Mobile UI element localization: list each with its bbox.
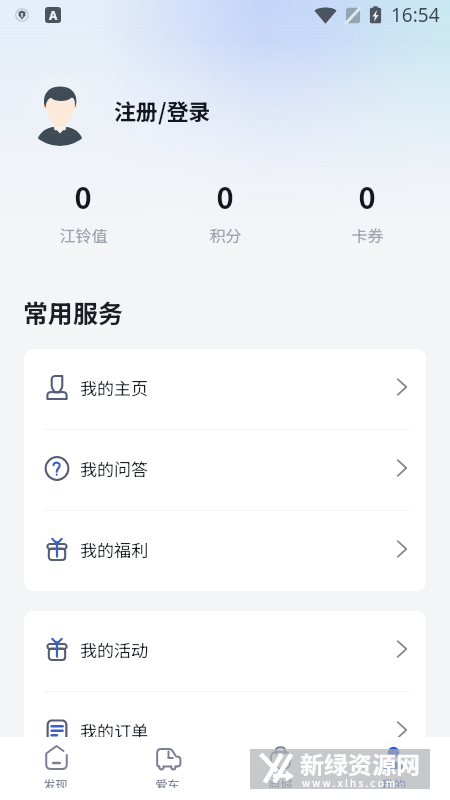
button[interactable]: 我的主页 <box>24 349 426 429</box>
button[interactable]: 我的订单 <box>24 692 426 772</box>
staticText: 我的活动 <box>80 637 148 662</box>
staticText: 我的福利 <box>80 537 148 562</box>
staticText: 我的订单 <box>80 718 148 743</box>
staticText: 爱车 <box>155 775 181 788</box>
button[interactable]: 0 <box>12 175 154 246</box>
staticText: 商城 <box>268 775 294 788</box>
button[interactable]: 注册/登录 <box>0 74 450 146</box>
button[interactable]: 我的 <box>337 737 450 800</box>
button[interactable]: 商城 <box>224 737 337 800</box>
staticText: 0 <box>216 175 234 217</box>
staticText: 16:54 <box>391 2 440 28</box>
staticText: 注册/登录 <box>114 94 211 126</box>
button[interactable]: 爱车 <box>112 737 224 800</box>
button[interactable]: 我的福利 <box>24 511 426 591</box>
staticText: 我的问答 <box>80 456 148 481</box>
button[interactable]: 0 <box>154 175 296 246</box>
staticText: 发现 <box>43 775 69 788</box>
staticText: 我的主页 <box>80 375 148 400</box>
staticText: 新绿资源网 <box>300 746 420 781</box>
staticText: 0 <box>74 175 92 217</box>
staticText: w w w . x l h s . c o m <box>302 775 396 789</box>
staticText: 积分 <box>209 223 242 246</box>
button[interactable]: 我的问答 <box>24 430 426 510</box>
staticText: 0 <box>358 175 376 217</box>
staticText: A <box>49 7 58 23</box>
button[interactable]: 0 <box>296 175 438 246</box>
button[interactable]: 发现 <box>0 737 112 800</box>
staticText: 常用服务 <box>23 294 124 330</box>
staticText: 卡券 <box>351 223 384 246</box>
staticText: 我的 <box>381 775 407 788</box>
staticText: 江铃值 <box>59 223 108 246</box>
button[interactable]: 我的活动 <box>24 611 426 691</box>
